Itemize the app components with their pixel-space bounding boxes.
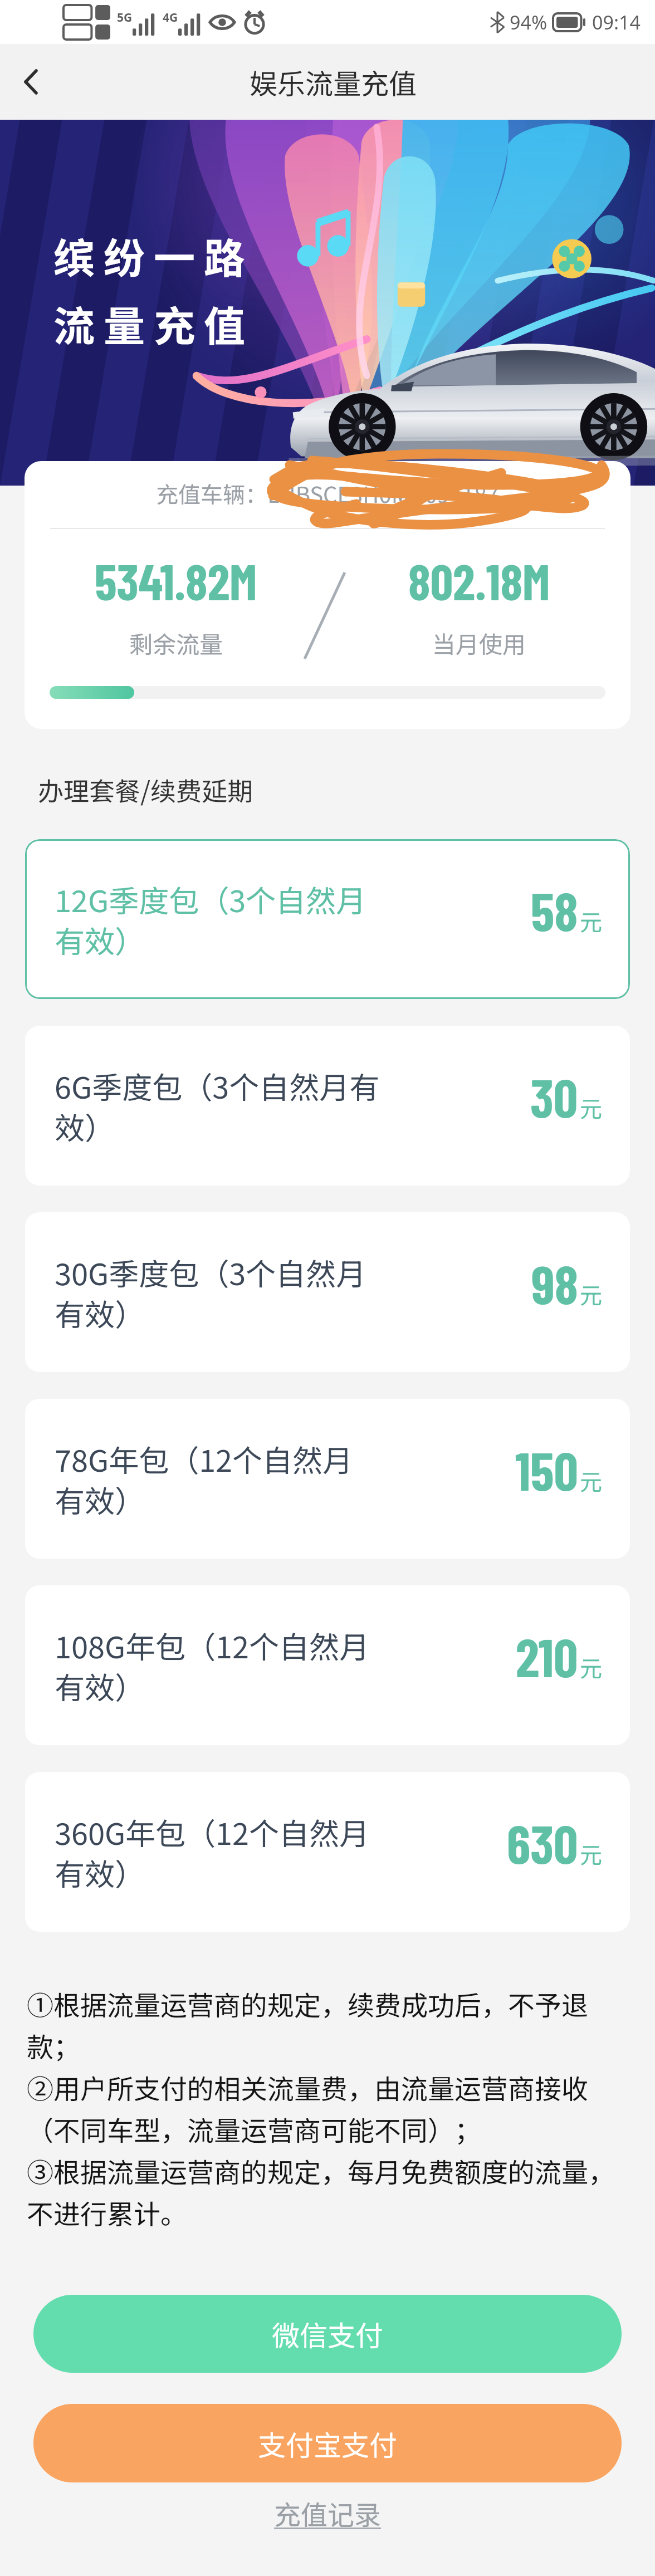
button[interactable]: 30G季度包（3个自然月 有效） [25, 1212, 630, 1372]
staticText: 当月使用 [432, 626, 526, 660]
staticText: 元 [580, 1278, 602, 1310]
staticText: 元 [580, 1651, 602, 1683]
button[interactable]: 6G季度包（3个自然月有 效） [25, 1026, 630, 1186]
staticText: 12G季度包（3个自然月 有效） [55, 877, 366, 962]
staticText: 360G年包（12个自然月 有效） [55, 1810, 370, 1894]
staticText: 剩余流量 [129, 626, 223, 660]
button[interactable]: Back [0, 44, 61, 120]
button[interactable]: 支付宝支付 [33, 2404, 622, 2482]
staticText: 元 [580, 1838, 602, 1870]
staticText: 流量充值 [53, 293, 254, 353]
staticText: 4G [163, 9, 178, 26]
staticText: 802.18M [408, 550, 550, 610]
staticText: 210 [516, 1624, 578, 1688]
staticText: 98 [531, 1251, 578, 1315]
staticText: ①根据流量运营商的规定，续费成功后，不予退 款； ②用户所支付的相关流量费，由流… [27, 1984, 615, 2232]
staticText: 108G年包（12个自然月 有效） [55, 1623, 370, 1708]
staticText: 元 [580, 1465, 602, 1497]
button[interactable]: 充值记录 [263, 2486, 393, 2540]
staticText: 6G季度包（3个自然月有 效） [55, 1064, 380, 1148]
staticText: 元 [580, 905, 602, 937]
staticText: 微信支付 [272, 2314, 383, 2354]
staticText: 150 [515, 1437, 578, 1501]
button[interactable]: 12G季度包（3个自然月 有效） [25, 839, 630, 999]
button[interactable]: 360G年包（12个自然月 有效） [25, 1772, 630, 1932]
staticText: 94% [510, 9, 548, 35]
staticText: 办理套餐/续费延期 [38, 771, 253, 809]
staticText: 5G [117, 9, 133, 26]
staticText: 充值记录 [274, 2494, 382, 2533]
button[interactable]: 78G年包（12个自然月 有效） [25, 1399, 630, 1559]
staticText: 630 [507, 1810, 578, 1874]
staticText: 30G季度包（3个自然月 有效） [55, 1250, 366, 1335]
staticText: 78G年包（12个自然月 有效） [55, 1437, 353, 1521]
button[interactable]: 微信支付 [33, 2295, 622, 2373]
staticText: 充值车辆：LNBSCE3H0MD094187 [156, 477, 499, 510]
staticText: 娱乐流量充值 [250, 62, 417, 102]
staticText: 5341.82M [95, 550, 257, 610]
staticText: 缤纷一路 [53, 226, 254, 285]
button[interactable]: 108G年包（12个自然月 有效） [25, 1585, 630, 1745]
staticText: 元 [580, 1091, 602, 1124]
staticText: 支付宝支付 [258, 2423, 397, 2464]
staticText: 58 [531, 878, 578, 942]
staticText: 30 [530, 1064, 578, 1128]
staticText: 09:14 [592, 9, 641, 35]
